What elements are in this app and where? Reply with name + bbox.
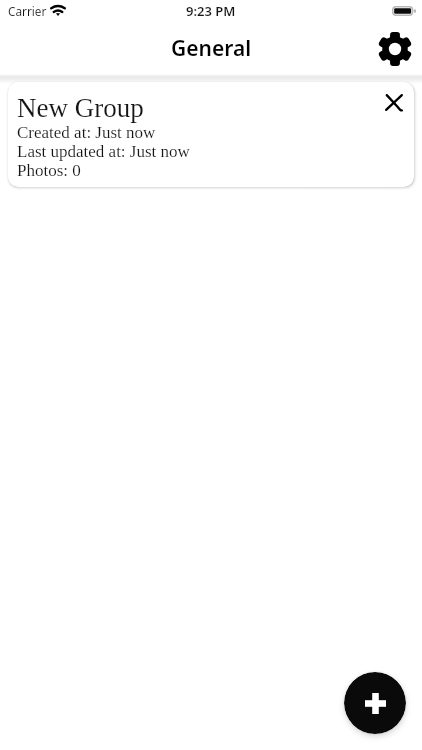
- staticText: 9:23 PM: [186, 2, 236, 20]
- staticText: Created at: Just now: [17, 123, 156, 142]
- staticText: Carrier: [8, 3, 47, 19]
- button[interactable]: Settings: [374, 28, 416, 70]
- button[interactable]: Add: [344, 672, 406, 734]
- staticText: Photos: 0: [17, 161, 81, 180]
- button[interactable]: New Group: [8, 82, 414, 187]
- button[interactable]: Close: [376, 84, 412, 120]
- staticText: Last updated at: Just now: [17, 142, 190, 161]
- staticText: New Group: [17, 93, 144, 123]
- staticText: General: [171, 34, 252, 63]
